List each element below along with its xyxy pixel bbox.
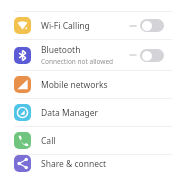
button[interactable]: Wi-Fi Calling (0, 12, 172, 39)
staticText: Mobile networks (41, 79, 108, 91)
button[interactable]: Turn on (140, 49, 164, 62)
staticText: Wi-Fi Calling (41, 20, 90, 32)
staticText: Connection not allowed (41, 57, 114, 66)
staticText: Data Manager (41, 107, 99, 119)
button[interactable]: Data Manager (0, 99, 172, 126)
button[interactable]: Turn on (140, 19, 164, 32)
button[interactable]: Mobile networks (0, 71, 172, 98)
staticText: Bluetooth (41, 44, 81, 56)
button[interactable]: Share & connect (0, 155, 172, 172)
button[interactable]: Bluetooth (0, 40, 172, 70)
staticText: Call (41, 135, 56, 147)
staticText: Share & connect (41, 158, 107, 170)
button[interactable]: Call (0, 127, 172, 154)
